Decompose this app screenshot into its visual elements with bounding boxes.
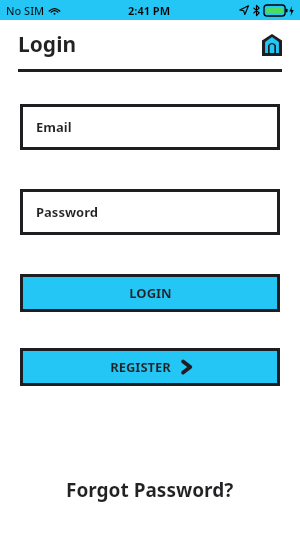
staticText: No SIM xyxy=(6,3,45,18)
button[interactable]: Home xyxy=(260,32,284,58)
staticText: 2:41 PM xyxy=(128,3,171,18)
button[interactable]: Forgot Password? xyxy=(0,471,300,509)
staticText: Email xyxy=(36,118,72,136)
button[interactable]: REGISTER xyxy=(20,348,280,386)
staticText: Password xyxy=(36,203,98,221)
button[interactable]: LOGIN xyxy=(20,274,280,312)
staticText: Login xyxy=(18,30,77,59)
button[interactable]: Password xyxy=(20,189,280,235)
staticText: REGISTER xyxy=(110,358,171,376)
button[interactable]: Email xyxy=(20,104,280,150)
staticText: Forgot Password? xyxy=(66,477,234,503)
staticText: LOGIN xyxy=(129,284,172,302)
